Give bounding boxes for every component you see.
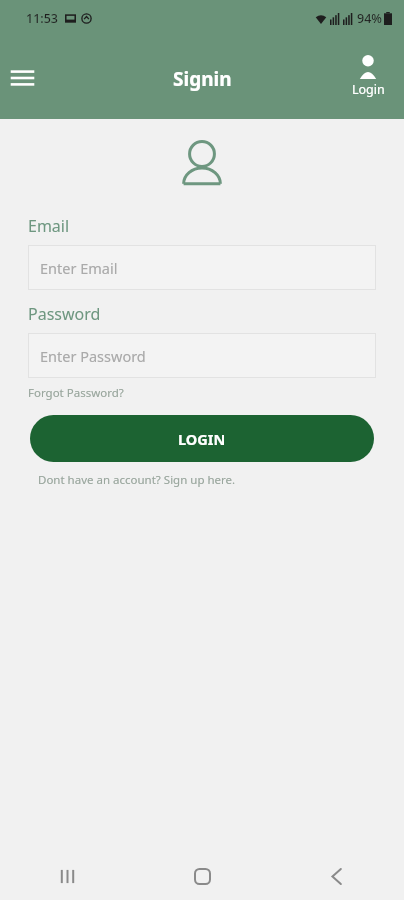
button[interactable]: Login — [340, 52, 396, 100]
staticText: Signin — [173, 66, 232, 92]
staticText: Dont have an account? Sign up here. — [38, 472, 236, 488]
staticText: 94% — [357, 10, 382, 27]
staticText: Forgot Password? — [28, 385, 124, 401]
staticText: Enter Email — [40, 258, 118, 278]
button[interactable]: LOGIN — [30, 415, 374, 462]
staticText: Login — [352, 81, 385, 98]
staticText: Password — [28, 303, 101, 325]
button[interactable]: Open navigation menu — [2, 58, 42, 98]
button[interactable]: Forgot Password? — [28, 385, 124, 401]
button[interactable]: Enter Email — [28, 245, 376, 290]
button[interactable]: Back — [313, 852, 361, 900]
button[interactable]: Recent apps — [43, 852, 91, 900]
staticText: 11:53 — [26, 10, 59, 27]
staticText: LOGIN — [178, 429, 226, 449]
button[interactable]: Enter Password — [28, 333, 376, 378]
staticText: Enter Password — [40, 346, 146, 366]
staticText: Email — [28, 215, 70, 237]
button[interactable]: Home — [178, 852, 226, 900]
button[interactable]: Dont have an account? Sign up here. — [38, 472, 236, 488]
